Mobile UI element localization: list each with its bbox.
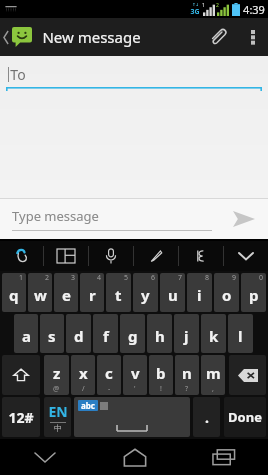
- button[interactable]: Keyboard layout: [44, 241, 88, 271]
- button[interactable]: 4: [80, 273, 104, 312]
- staticText: y: [141, 285, 150, 305]
- button[interactable]: Hide keyboard: [0, 439, 90, 475]
- button[interactable]: Hide keyboard: [224, 241, 268, 271]
- button[interactable]: c: [97, 355, 121, 395]
- staticText: 2: [45, 273, 50, 283]
- staticText: 7: [178, 273, 183, 283]
- staticText: d: [74, 326, 84, 346]
- staticText: ?: [185, 384, 189, 394]
- staticText: t: [115, 285, 122, 305]
- staticText: r: [89, 285, 96, 305]
- staticText: n: [182, 363, 192, 383]
- button[interactable]: x: [71, 355, 95, 395]
- button[interactable]: Voice input: [89, 241, 133, 271]
- button[interactable]: a: [14, 314, 38, 353]
- button[interactable]: 3: [54, 273, 78, 312]
- button[interactable]: 1: [2, 273, 26, 312]
- staticText: Done: [228, 408, 262, 426]
- button[interactable]: Period: [193, 397, 220, 437]
- staticText: 12#: [8, 408, 34, 427]
- button[interactable]: Type message: [12, 207, 212, 231]
- staticText: ↑↓: [192, 2, 199, 7]
- button[interactable]: Shift: [2, 355, 40, 395]
- staticText: 0: [259, 273, 264, 283]
- staticText: !: [160, 384, 162, 394]
- staticText: g: [128, 326, 138, 346]
- button[interactable]: Home: [90, 439, 179, 475]
- staticText: 3: [71, 273, 76, 283]
- button[interactable]: Draw: [134, 241, 178, 271]
- staticText: ,: [212, 384, 214, 394]
- button[interactable]: Done: [224, 397, 266, 437]
- staticText: e: [62, 285, 71, 305]
- button[interactable]: h: [147, 314, 172, 353]
- button[interactable]: Gesture: [179, 241, 223, 271]
- staticText: m: [206, 363, 221, 383]
- button[interactable]: b: [149, 355, 173, 395]
- button[interactable]: k: [201, 314, 226, 353]
- staticText: i: [197, 285, 202, 305]
- button[interactable]: f: [93, 314, 118, 353]
- button[interactable]: Symbols: [2, 397, 40, 437]
- staticText: c: [105, 363, 113, 383]
- button[interactable]: Space: [74, 397, 190, 437]
- button[interactable]: s: [40, 314, 64, 353]
- button[interactable]: To: [8, 61, 260, 87]
- staticText: h: [155, 326, 165, 346]
- button[interactable]: Attach: [198, 18, 238, 56]
- button[interactable]: l: [228, 314, 253, 353]
- staticText: 6: [151, 273, 156, 283]
- staticText: To: [10, 65, 26, 84]
- button[interactable]: j: [174, 314, 199, 353]
- staticText: 2: [216, 2, 219, 9]
- staticText: b: [156, 363, 166, 383]
- staticText: ': [134, 384, 136, 394]
- staticText: x: [79, 363, 88, 383]
- staticText: 4:39: [243, 2, 265, 17]
- staticText: New message: [42, 27, 141, 47]
- staticText: v: [131, 363, 140, 383]
- button[interactable]: 5: [106, 273, 131, 312]
- button[interactable]: 6: [133, 273, 158, 312]
- staticText: w: [34, 285, 47, 305]
- button[interactable]: m: [201, 355, 225, 395]
- button[interactable]: Backspace: [229, 355, 266, 395]
- button[interactable]: Send: [220, 199, 268, 239]
- button[interactable]: 0: [241, 273, 266, 312]
- staticText: -: [108, 384, 111, 394]
- staticText: abc: [81, 400, 95, 411]
- staticText: 8: [205, 273, 210, 283]
- button[interactable]: g: [120, 314, 145, 353]
- staticText: 3G: [190, 7, 200, 17]
- button[interactable]: Recent apps: [179, 439, 268, 475]
- staticText: 5: [124, 273, 129, 283]
- staticText: EN: [48, 402, 68, 421]
- button[interactable]: Language: [44, 397, 71, 437]
- staticText: z: [53, 363, 61, 383]
- button[interactable]: [0, 18, 36, 56]
- staticText: 4: [97, 273, 102, 283]
- button[interactable]: 7: [160, 273, 185, 312]
- staticText: @: [53, 384, 60, 394]
- staticText: 中: [54, 423, 62, 433]
- button[interactable]: 8: [187, 273, 212, 312]
- staticText: l: [238, 326, 243, 346]
- button[interactable]: 2: [28, 273, 52, 312]
- staticText: p: [249, 285, 259, 305]
- staticText: q: [9, 285, 19, 305]
- staticText: 1: [19, 273, 24, 283]
- staticText: u: [168, 285, 178, 305]
- staticText: 1: [202, 2, 205, 9]
- button[interactable]: More options: [238, 18, 268, 56]
- button[interactable]: n: [175, 355, 199, 395]
- staticText: o: [222, 285, 232, 305]
- staticText: 9: [232, 273, 237, 283]
- staticText: a: [22, 326, 31, 346]
- button[interactable]: Handwriting: [0, 241, 43, 271]
- staticText: .: [205, 408, 209, 427]
- button[interactable]: v: [123, 355, 147, 395]
- button[interactable]: 9: [214, 273, 239, 312]
- button[interactable]: z: [44, 355, 69, 395]
- button[interactable]: d: [66, 314, 91, 353]
- staticText: f: [103, 326, 109, 346]
